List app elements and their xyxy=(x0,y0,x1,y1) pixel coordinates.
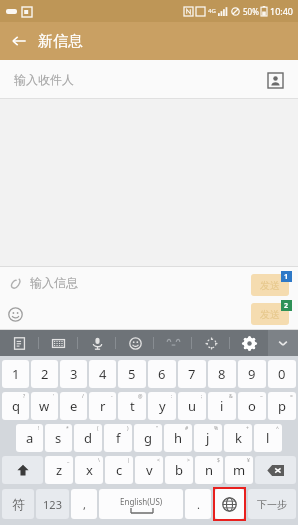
staticText: + xyxy=(246,425,249,432)
button[interactable]: 3 xyxy=(60,360,87,388)
staticText: m xyxy=(233,461,246,479)
staticText: - xyxy=(111,393,113,400)
staticText: g xyxy=(144,429,152,447)
button[interactable]: > xyxy=(165,456,193,484)
staticText: _ xyxy=(67,457,70,464)
button[interactable]: Attach xyxy=(0,268,30,298)
button[interactable]: Emoticon xyxy=(154,330,192,356)
staticText: i xyxy=(220,397,224,415)
button[interactable]: Space xyxy=(99,489,183,519)
button[interactable]: Backspace xyxy=(255,456,296,484)
staticText: ~ xyxy=(260,393,263,400)
button[interactable]: Back xyxy=(0,22,38,60)
button[interactable]: Pick contact xyxy=(262,67,288,93)
staticText: ? xyxy=(23,393,26,400)
button[interactable]: * xyxy=(45,424,72,452)
button[interactable]: 1 xyxy=(2,360,29,388)
staticText: f xyxy=(116,429,121,447)
button[interactable]: 5 xyxy=(118,360,146,388)
staticText: e xyxy=(70,397,78,415)
button[interactable]: ^ xyxy=(254,424,282,452)
staticText: x xyxy=(86,461,93,479)
staticText: % xyxy=(214,425,219,432)
staticText: 符 xyxy=(12,496,25,512)
button[interactable]: % xyxy=(194,424,222,452)
staticText: p xyxy=(278,397,286,415)
staticText: q xyxy=(12,397,20,415)
staticText: / xyxy=(82,393,84,400)
staticText: . xyxy=(197,497,200,512)
button[interactable]: . xyxy=(185,489,211,519)
button[interactable]: < xyxy=(135,456,163,484)
staticText: @ xyxy=(138,393,143,400)
button[interactable]: ? xyxy=(2,392,29,420)
staticText: | xyxy=(127,457,130,464)
staticText: \ xyxy=(98,457,100,464)
button[interactable]: Shift xyxy=(2,456,43,484)
staticText: w xyxy=(39,397,50,415)
button[interactable]: 符 xyxy=(2,489,34,519)
button[interactable]: Emoji xyxy=(0,299,30,329)
button[interactable]: 2 xyxy=(31,360,58,388)
staticText: 9 xyxy=(248,365,256,383)
staticText: h xyxy=(174,429,183,447)
button[interactable]: | xyxy=(105,456,133,484)
button[interactable]: / xyxy=(60,392,87,420)
button[interactable]: 发送 xyxy=(251,274,289,296)
staticText: d xyxy=(84,429,92,447)
staticText: 0 xyxy=(278,365,286,383)
button[interactable]: & xyxy=(208,392,236,420)
button[interactable]: - xyxy=(89,392,116,420)
button[interactable]: \ xyxy=(75,456,103,484)
button[interactable]: Hide keyboard xyxy=(268,330,298,356)
button[interactable]: : xyxy=(148,392,176,420)
staticText: # xyxy=(185,425,189,432)
button[interactable]: ; xyxy=(178,392,206,420)
button[interactable]: Emoji xyxy=(116,330,154,356)
button[interactable]: 0 xyxy=(268,360,296,388)
button[interactable]: Voice input xyxy=(78,330,116,356)
button[interactable]: $ xyxy=(195,456,223,484)
staticText: : xyxy=(171,393,173,400)
button[interactable]: 4 xyxy=(89,360,116,388)
button[interactable]: , xyxy=(71,489,97,519)
button[interactable]: ¥ xyxy=(225,456,253,484)
button[interactable]: + xyxy=(224,424,252,452)
button[interactable]: _ xyxy=(45,456,73,484)
button[interactable]: 发送 xyxy=(251,303,289,325)
button[interactable]: # xyxy=(164,424,192,452)
staticText: " xyxy=(156,425,159,432)
button[interactable]: ' xyxy=(31,392,58,420)
button[interactable]: Change language xyxy=(215,489,244,519)
staticText: $ xyxy=(217,457,220,464)
button[interactable]: 123 xyxy=(36,489,69,519)
button[interactable]: 6 xyxy=(148,360,176,388)
button[interactable]: Settings xyxy=(230,330,268,356)
staticText: 2 xyxy=(41,365,49,383)
staticText: 输入收件人 xyxy=(14,72,74,87)
button[interactable]: ! xyxy=(16,424,43,452)
button[interactable]: 下一步 xyxy=(248,489,296,519)
staticText: , xyxy=(83,497,86,512)
staticText: b xyxy=(175,461,183,479)
button[interactable]: Clipboard xyxy=(0,330,39,356)
button[interactable]: 9 xyxy=(238,360,266,388)
button[interactable]: = xyxy=(268,392,296,420)
staticText: 50% xyxy=(243,6,259,17)
staticText: y xyxy=(159,397,166,415)
staticText: ¥ xyxy=(247,457,250,464)
button[interactable]: 7 xyxy=(178,360,206,388)
staticText: ; xyxy=(201,393,203,400)
staticText: ' xyxy=(53,393,55,400)
button[interactable]: ~ xyxy=(238,392,266,420)
button[interactable]: Keyboard layout xyxy=(39,330,78,356)
staticText: n xyxy=(205,461,214,479)
staticText: 7 xyxy=(188,365,196,383)
button[interactable]: " xyxy=(134,424,162,452)
button[interactable]: 8 xyxy=(208,360,236,388)
button[interactable]: Move cursor xyxy=(192,330,230,356)
button[interactable]: @ xyxy=(118,392,146,420)
button[interactable]: ) xyxy=(104,424,132,452)
button[interactable]: ( xyxy=(74,424,102,452)
staticText: o xyxy=(248,397,256,415)
